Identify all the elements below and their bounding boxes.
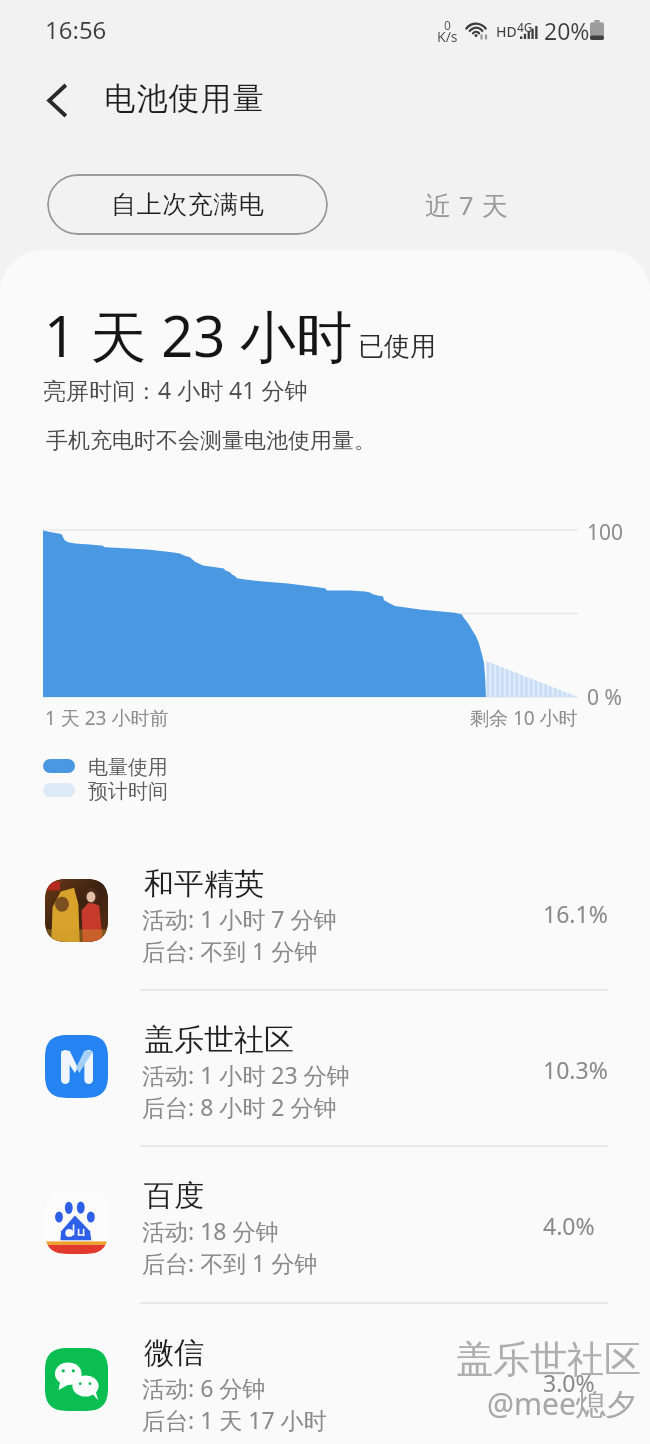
staticText: @mee熄夕: [487, 1383, 636, 1424]
staticText: 活动: 18 分钟: [142, 1215, 279, 1246]
staticText: 亮屏时间：4 小时 41 分钟: [43, 374, 308, 405]
staticText: 0: [444, 17, 451, 33]
staticText: 0 %: [587, 683, 622, 712]
staticText: 后台: 不到 1 分钟: [142, 1247, 318, 1278]
staticText: 后台: 1 天 17 小时: [142, 1404, 327, 1435]
staticText: K/s: [437, 27, 458, 46]
staticText: 3.0%: [543, 1367, 595, 1398]
staticText: 百度: [144, 1177, 204, 1215]
staticText: 1 天 23 小时前: [45, 705, 169, 731]
staticText: 微信: [144, 1334, 204, 1372]
staticText: 电池使用量: [104, 79, 264, 118]
staticText: 16:56: [45, 13, 107, 46]
staticText: 10.3%: [543, 1054, 608, 1085]
button[interactable]: 微信: [0, 1302, 650, 1444]
staticText: 4.0%: [543, 1210, 595, 1241]
button[interactable]: 自上次充满电: [47, 174, 328, 235]
staticText: HD: [496, 22, 517, 41]
staticText: 和平精英: [144, 865, 264, 903]
button[interactable]: 盖乐世社区: [0, 989, 650, 1145]
staticText: 手机充电时不会测量电池使用量。: [46, 427, 376, 455]
staticText: 4G: [517, 19, 533, 35]
staticText: 100: [587, 518, 624, 547]
button[interactable]: Back: [29, 72, 85, 128]
staticText: 后台: 不到 1 分钟: [142, 935, 318, 966]
button[interactable]: 近 7 天: [406, 174, 526, 235]
staticText: 电量使用: [88, 755, 168, 780]
staticText: 盖乐世社区: [144, 1021, 294, 1059]
staticText: 近 7 天: [425, 187, 508, 223]
staticText: 剩余 10 小时: [470, 705, 578, 731]
staticText: 20%: [544, 15, 590, 46]
staticText: 预计时间: [88, 779, 168, 804]
staticText: 后台: 8 小时 2 分钟: [142, 1091, 337, 1122]
staticText: 已使用: [358, 330, 436, 363]
staticText: 活动: 1 小时 7 分钟: [142, 903, 337, 934]
staticText: 16.1%: [543, 898, 608, 929]
staticText: 1 天 23 小时: [44, 297, 352, 373]
staticText: 活动: 1 小时 23 分钟: [142, 1059, 350, 1090]
staticText: 活动: 6 分钟: [142, 1372, 266, 1403]
button[interactable]: 百度: [0, 1145, 650, 1301]
staticText: 盖乐世社区: [456, 1336, 641, 1383]
button[interactable]: 和平精英: [0, 833, 650, 989]
staticText: 自上次充满电: [111, 189, 264, 220]
